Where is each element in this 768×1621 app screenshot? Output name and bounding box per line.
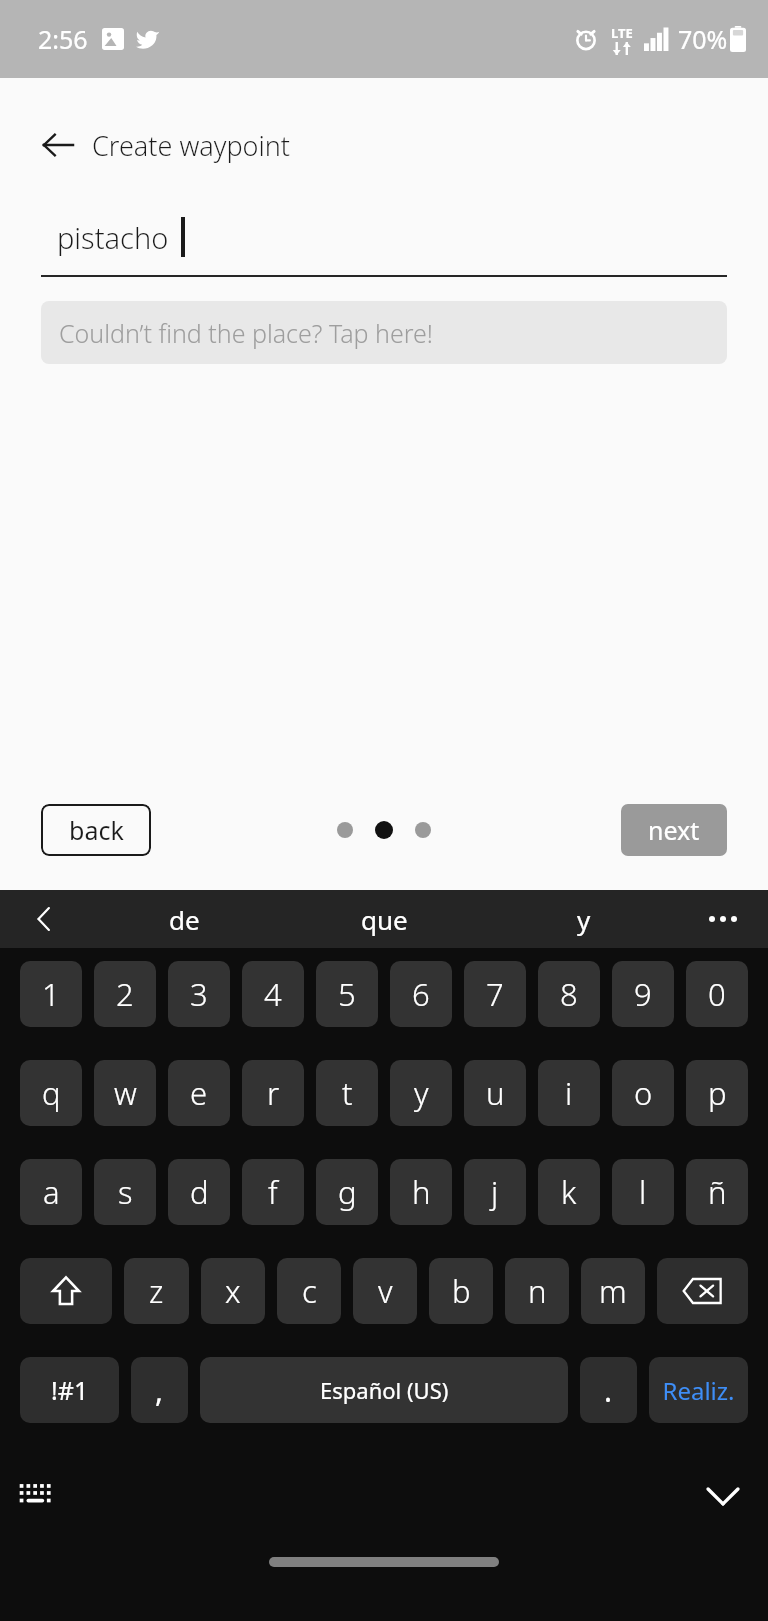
staticText: 70%	[678, 22, 728, 56]
button[interactable]: Shift	[20, 1258, 112, 1324]
staticText: y	[577, 902, 591, 937]
button[interactable]: u	[464, 1060, 526, 1126]
staticText: o	[634, 1072, 653, 1114]
staticText: !#1	[51, 1373, 89, 1407]
staticText: 8	[560, 973, 578, 1015]
staticText: a	[43, 1171, 60, 1213]
button[interactable]: 0	[686, 961, 748, 1027]
staticText: p	[708, 1072, 727, 1114]
button[interactable]: l	[612, 1159, 674, 1225]
staticText: de	[169, 902, 200, 937]
staticText: 5	[338, 973, 356, 1015]
staticText: b	[452, 1270, 471, 1312]
button[interactable]: que	[284, 890, 484, 948]
button[interactable]: h	[390, 1159, 452, 1225]
staticText: Español (US)	[320, 1375, 449, 1405]
staticText: 9	[634, 973, 652, 1015]
button[interactable]: z	[124, 1258, 189, 1324]
staticText: 1	[42, 973, 60, 1015]
button[interactable]: s	[94, 1159, 156, 1225]
staticText: m	[599, 1270, 627, 1312]
staticText: 4	[264, 973, 282, 1015]
button[interactable]: Realiz.	[649, 1357, 748, 1423]
button[interactable]: f	[242, 1159, 304, 1225]
button[interactable]: a	[20, 1159, 82, 1225]
staticText: d	[190, 1171, 209, 1213]
staticText: q	[42, 1072, 61, 1114]
staticText: ,	[155, 1370, 164, 1411]
button[interactable]: q	[20, 1060, 82, 1126]
button[interactable]: y	[484, 890, 684, 948]
button[interactable]: c	[277, 1258, 341, 1324]
button[interactable]: 9	[612, 961, 674, 1027]
staticText: que	[361, 902, 408, 937]
button[interactable]: 5	[316, 961, 378, 1027]
button[interactable]: de	[84, 890, 284, 948]
staticText: 6	[412, 973, 430, 1015]
button[interactable]: 4	[242, 961, 304, 1027]
button[interactable]: 3	[168, 961, 230, 1027]
button[interactable]: Previous suggestions	[20, 894, 70, 944]
button[interactable]: x	[201, 1258, 265, 1324]
staticText: 2	[116, 973, 134, 1015]
staticText: ñ	[708, 1171, 727, 1213]
button[interactable]: e	[168, 1060, 230, 1126]
button[interactable]: w	[94, 1060, 156, 1126]
button[interactable]: i	[538, 1060, 600, 1126]
staticText: f	[268, 1171, 278, 1213]
button[interactable]: k	[538, 1159, 600, 1225]
button[interactable]: t	[316, 1060, 378, 1126]
button[interactable]: Backspace	[657, 1258, 748, 1324]
staticText: Create waypoint	[92, 127, 290, 164]
button[interactable]: back	[41, 804, 151, 856]
button[interactable]: 7	[464, 961, 526, 1027]
button[interactable]: o	[612, 1060, 674, 1126]
button[interactable]: p	[686, 1060, 748, 1126]
button[interactable]: v	[353, 1258, 417, 1324]
staticText: 2:56	[38, 22, 88, 56]
button[interactable]: Hide keyboard	[694, 1467, 752, 1525]
button[interactable]: m	[581, 1258, 645, 1324]
staticText: j	[491, 1171, 499, 1213]
button[interactable]: d	[168, 1159, 230, 1225]
staticText: v	[378, 1270, 393, 1312]
staticText: w	[114, 1072, 137, 1114]
button[interactable]: More options	[698, 894, 748, 944]
staticText: LTE	[611, 24, 633, 42]
staticText: back	[69, 813, 124, 847]
button[interactable]: g	[316, 1159, 378, 1225]
staticText: h	[412, 1171, 431, 1213]
button[interactable]: j	[464, 1159, 526, 1225]
staticText: l	[639, 1171, 647, 1213]
button[interactable]: .	[580, 1357, 637, 1423]
staticText: g	[338, 1171, 357, 1213]
button[interactable]: r	[242, 1060, 304, 1126]
button[interactable]: next	[621, 804, 727, 856]
button[interactable]: y	[390, 1060, 452, 1126]
button[interactable]: 1	[20, 961, 82, 1027]
staticText: n	[528, 1270, 547, 1312]
button[interactable]: n	[505, 1258, 569, 1324]
staticText: Couldn’t find the place? Tap here!	[59, 316, 433, 350]
staticText: pistacho	[57, 218, 169, 257]
button[interactable]: 6	[390, 961, 452, 1027]
staticText: z	[149, 1270, 164, 1312]
staticText: y	[414, 1072, 429, 1114]
staticText: Realiz.	[662, 1374, 735, 1407]
button[interactable]: Español (US)	[200, 1357, 568, 1423]
button[interactable]: Back	[30, 117, 86, 173]
staticText: x	[225, 1270, 241, 1312]
button[interactable]: pistacho	[41, 217, 727, 277]
staticText: r	[267, 1072, 280, 1114]
button[interactable]: b	[429, 1258, 493, 1324]
staticText: c	[302, 1270, 317, 1312]
button[interactable]: ñ	[686, 1159, 748, 1225]
staticText: 3	[190, 973, 208, 1015]
button[interactable]: 2	[94, 961, 156, 1027]
staticText: e	[190, 1072, 208, 1114]
button[interactable]: Couldn’t find the place? Tap here!	[41, 301, 727, 364]
button[interactable]: Keyboard settings	[8, 1467, 64, 1523]
button[interactable]: !#1	[20, 1357, 119, 1423]
button[interactable]: 8	[538, 961, 600, 1027]
button[interactable]: ,	[131, 1357, 188, 1423]
